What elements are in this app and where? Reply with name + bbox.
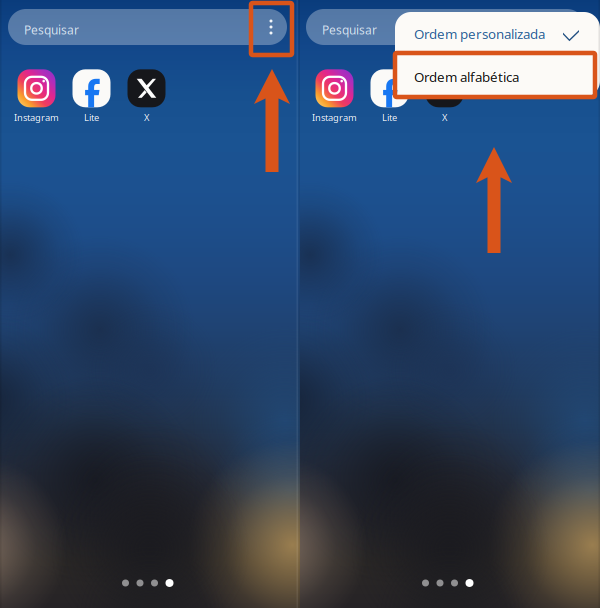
staticText: Lite xyxy=(382,111,397,124)
button[interactable]: Instagram xyxy=(307,68,362,125)
button[interactable]: Ordem alfabética xyxy=(395,53,600,97)
button[interactable]: Mais opções xyxy=(258,9,284,45)
staticText: Instagram xyxy=(14,111,59,124)
staticText: Pesquisar xyxy=(322,22,377,38)
button[interactable]: X xyxy=(417,68,472,125)
staticText: X xyxy=(442,111,447,124)
button[interactable]: X xyxy=(119,68,174,125)
button[interactable]: Instagram xyxy=(9,68,64,125)
staticText: X xyxy=(144,111,149,124)
staticText: Lite xyxy=(84,111,99,124)
button[interactable]: Ordem personalizada xyxy=(395,12,600,53)
button[interactable]: Lite xyxy=(64,68,119,125)
staticText: Ordem alfabética xyxy=(414,68,519,86)
staticText: Pesquisar xyxy=(24,22,79,38)
button[interactable]: Mais opções xyxy=(556,9,582,45)
staticText: Ordem personalizada xyxy=(414,25,545,43)
staticText: Instagram xyxy=(312,111,357,124)
button[interactable]: Lite xyxy=(362,68,417,125)
